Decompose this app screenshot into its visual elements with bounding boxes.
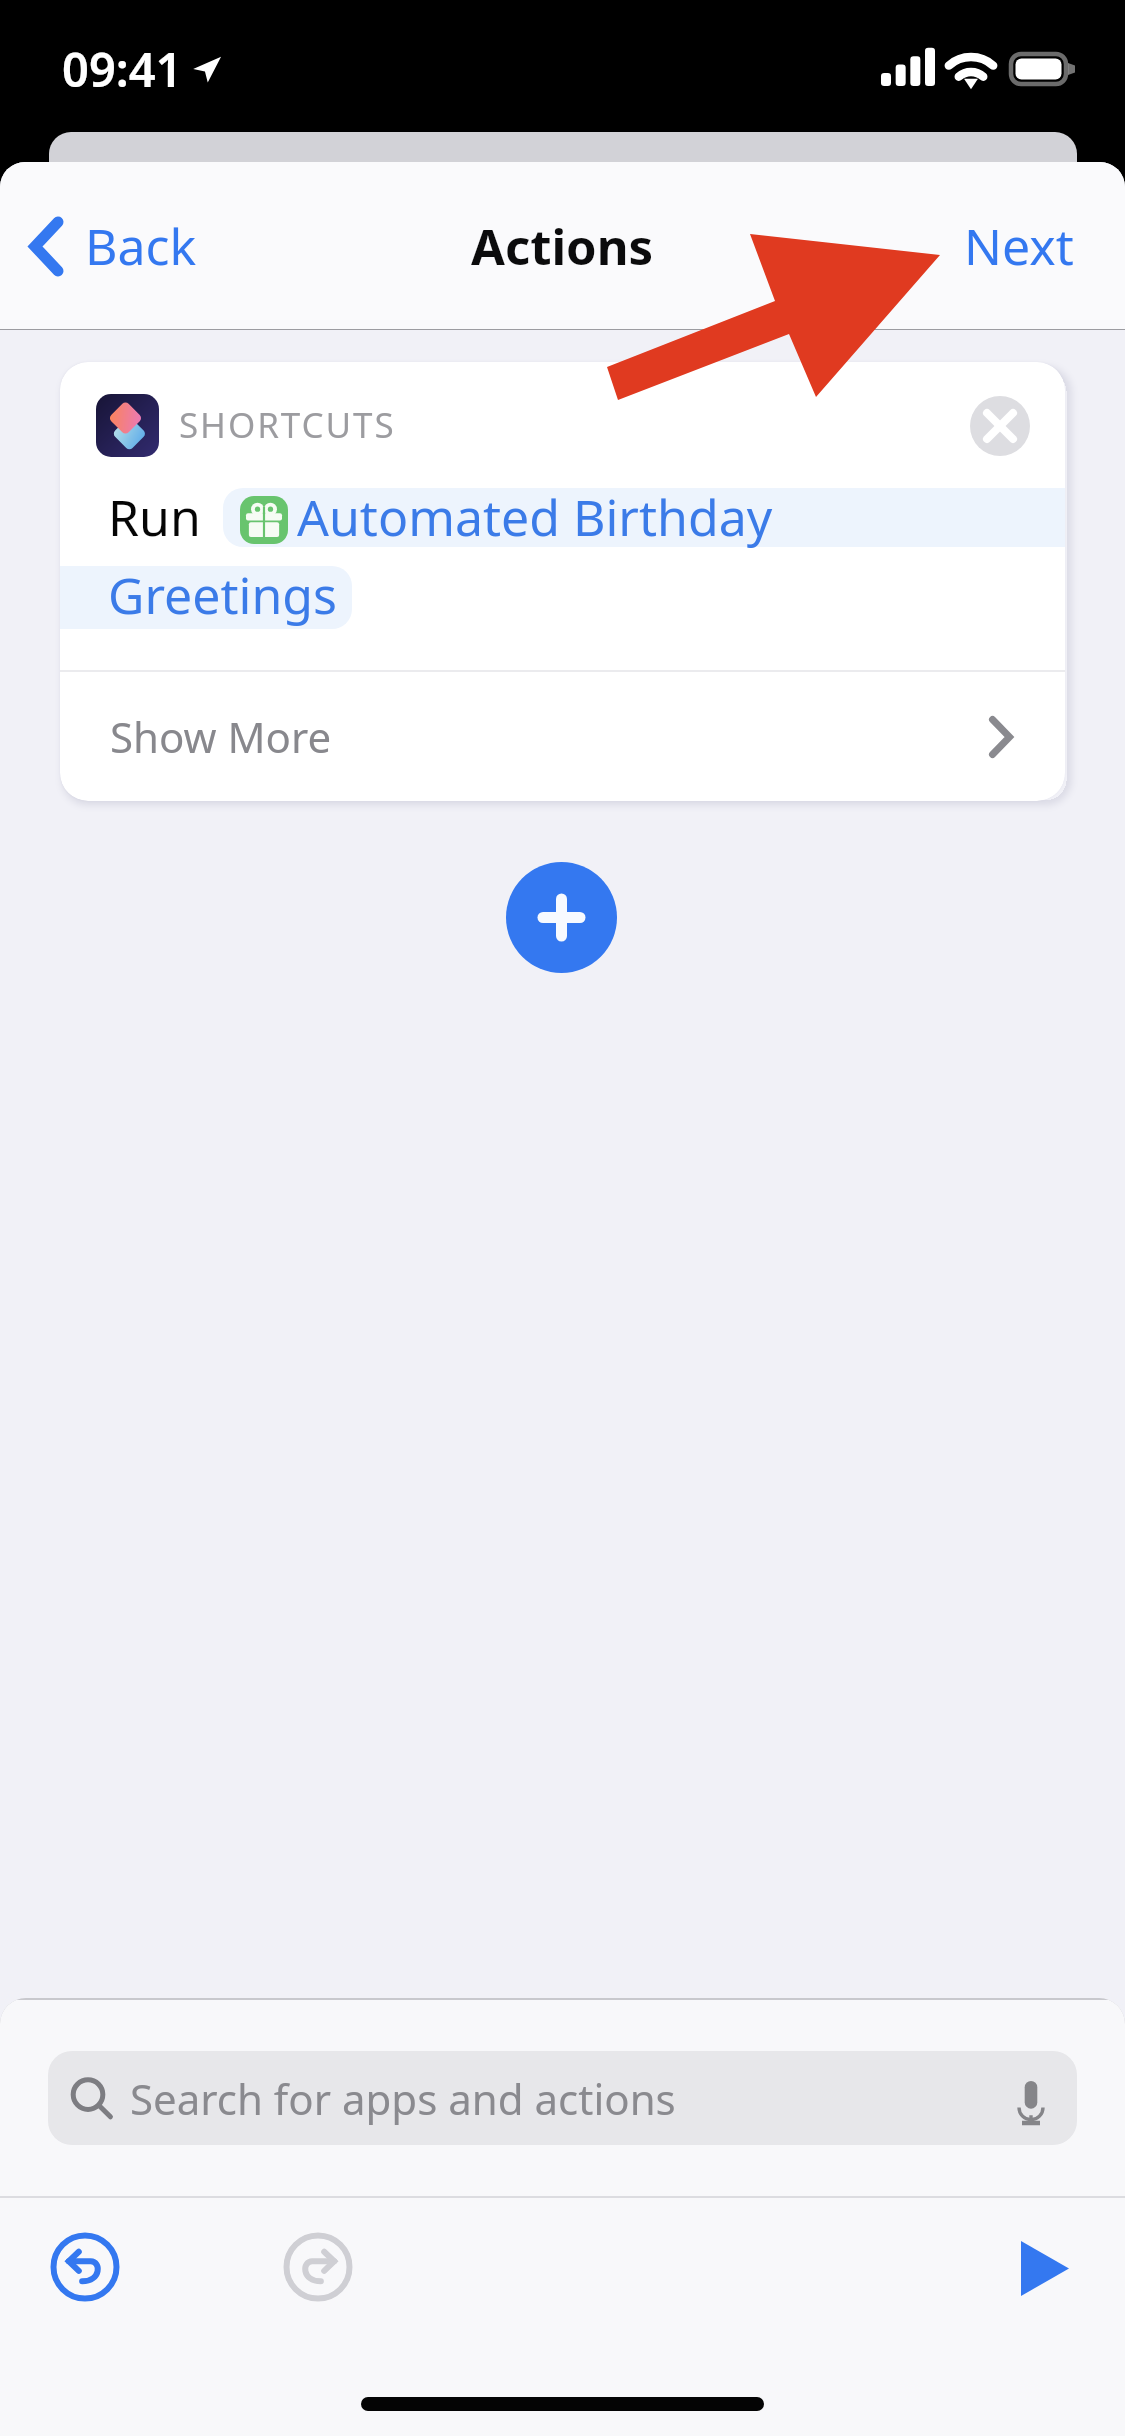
staticText: Show More — [110, 708, 332, 765]
button[interactable]: Redo — [268, 2217, 368, 2317]
staticText: Search for apps and actions — [130, 2070, 676, 2127]
staticText: SHORTCUTS — [179, 401, 396, 449]
button[interactable]: Undo — [35, 2217, 135, 2317]
staticText: Actions — [471, 213, 654, 280]
staticText: Greetings — [108, 561, 337, 629]
button[interactable]: Show More — [60, 672, 1065, 801]
button[interactable]: Next — [936, 196, 1125, 296]
staticText: Run — [108, 483, 201, 551]
button[interactable]: Run shortcut — [995, 2218, 1095, 2318]
button[interactable]: Add action — [506, 862, 617, 973]
staticText: Back — [85, 212, 197, 280]
staticText: Next — [964, 212, 1074, 280]
button[interactable]: Back — [0, 196, 221, 296]
staticText: 09:41 — [62, 37, 183, 101]
button[interactable]: Search for apps and actions — [48, 2051, 1077, 2145]
button[interactable]: Remove action — [970, 396, 1030, 456]
staticText: Automated Birthday — [297, 483, 773, 551]
